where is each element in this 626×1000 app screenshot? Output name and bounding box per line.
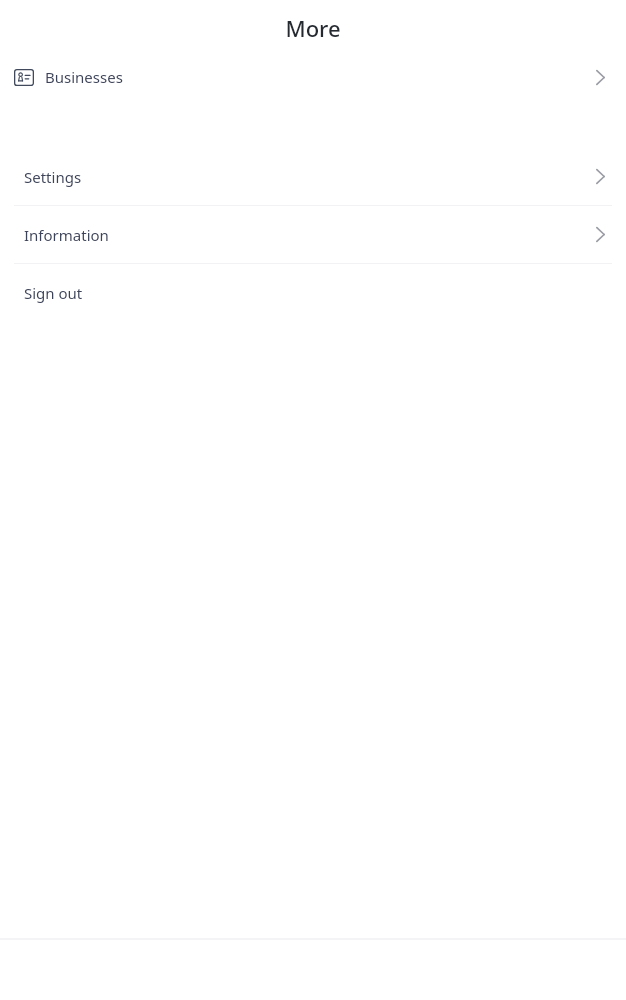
staticText: Information xyxy=(24,225,109,245)
button[interactable]: Information xyxy=(0,206,626,263)
button[interactable]: Settings xyxy=(0,148,626,205)
button[interactable]: Sign out xyxy=(0,264,626,321)
button[interactable]: Businesses xyxy=(0,56,626,98)
staticText: Sign out xyxy=(24,283,83,303)
other: Open xyxy=(594,168,607,185)
other: Open xyxy=(594,69,607,86)
other: Open xyxy=(594,226,607,243)
staticText: Settings xyxy=(24,167,82,187)
staticText: Businesses xyxy=(45,67,123,87)
staticText: More xyxy=(285,13,341,43)
